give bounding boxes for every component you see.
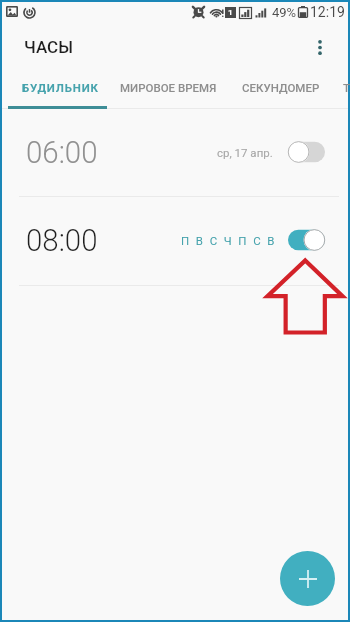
button[interactable]: МИРОВОЕ ВРЕМЯ xyxy=(111,69,225,106)
staticText: 49% xyxy=(272,5,297,20)
button[interactable]: Alarm on xyxy=(288,229,325,251)
staticText: МИРОВОЕ ВРЕМЯ xyxy=(120,81,217,94)
button[interactable]: Add alarm xyxy=(280,551,335,606)
staticText: СЕКУНДОМЕР xyxy=(242,81,320,94)
button[interactable]: 08:00 xyxy=(2,198,348,286)
button[interactable]: 06:00 xyxy=(2,110,348,198)
staticText: П В С Ч П С В xyxy=(181,234,277,247)
staticText: ср, 17 апр. xyxy=(217,146,273,159)
button[interactable]: БУДИЛЬНИК xyxy=(11,69,109,106)
button[interactable]: More options xyxy=(300,22,340,72)
staticText: 06:00 xyxy=(26,134,98,170)
staticText: ЧАСЫ xyxy=(24,37,73,57)
button[interactable]: СЕКУНДОМЕР xyxy=(233,69,329,106)
staticText: ТАЙМЕР xyxy=(343,81,350,94)
staticText: 1 xyxy=(228,8,233,17)
button[interactable]: ТАЙМЕР xyxy=(343,69,350,106)
button[interactable]: Alarm off xyxy=(288,141,325,163)
staticText: 12:19 xyxy=(310,4,345,20)
staticText: 08:00 xyxy=(26,222,98,258)
staticText: БУДИЛЬНИК xyxy=(22,81,99,94)
